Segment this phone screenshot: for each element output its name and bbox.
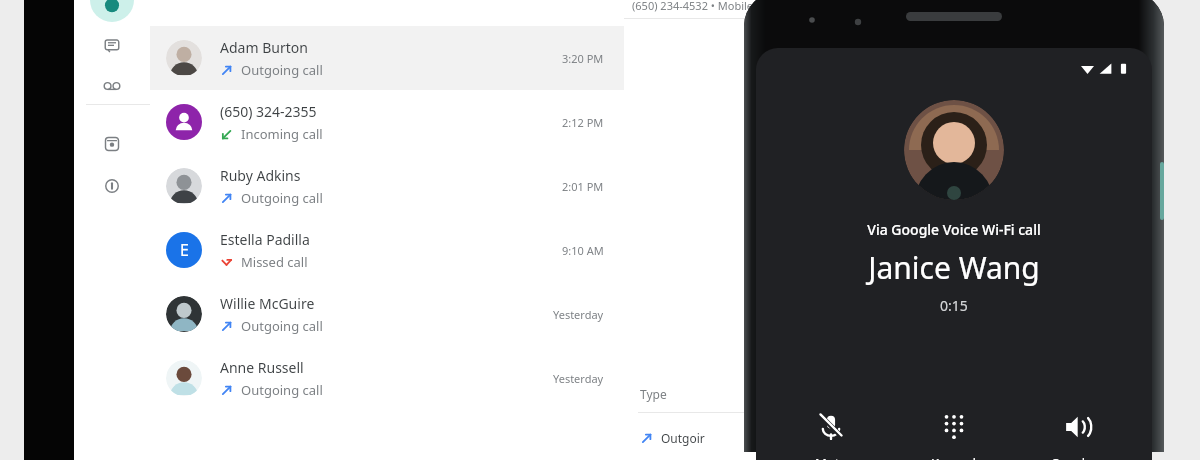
staticText: Anne Russell [220, 358, 304, 377]
staticText: Missed call [241, 253, 308, 271]
staticText: Outgoing call [241, 317, 323, 335]
staticText: Keypad [931, 454, 977, 460]
staticText: Type [640, 386, 667, 402]
button[interactable]: Adam Burton [150, 26, 624, 90]
staticText: 9:10 AM [562, 243, 604, 258]
button[interactable]: Willie McGuire [150, 282, 624, 346]
staticText: Yesterday [553, 307, 604, 322]
button[interactable]: Mute [783, 406, 879, 460]
staticText: E [180, 239, 189, 261]
button[interactable]: Messages [96, 30, 128, 62]
staticText: Speaker [1052, 454, 1102, 460]
staticText: Willie McGuire [220, 294, 315, 313]
staticText: (650) 324-2355 [220, 102, 317, 121]
staticText: Incoming call [241, 125, 323, 143]
button[interactable]: Voicemail [96, 70, 128, 102]
staticText: 2:01 PM [562, 179, 604, 194]
staticText: Via Google Voice Wi-Fi call [867, 220, 1041, 239]
staticText: Outgoing call [241, 61, 323, 79]
button[interactable]: E [150, 218, 624, 282]
button[interactable]: (650) 324-2355 [150, 90, 624, 154]
staticText: Estella Padilla [220, 230, 310, 249]
staticText: Janice Wang [868, 247, 1040, 288]
button[interactable]: Anne Russell [150, 346, 624, 410]
button[interactable]: Speaker [1029, 406, 1125, 460]
staticText: Ruby Adkins [220, 166, 301, 185]
staticText: 2:12 PM [562, 115, 604, 130]
staticText: Outgoing call [241, 381, 323, 399]
staticText: Outgoir [661, 430, 705, 446]
staticText: (650) 234-4532 • Mobile [632, 0, 754, 13]
button[interactable]: Compose [90, 0, 134, 22]
staticText: Yesterday [553, 371, 604, 386]
button[interactable]: Keypad [906, 406, 1002, 460]
staticText: 3:20 PM [562, 51, 604, 66]
staticText: Adam Burton [220, 38, 308, 57]
staticText: 0:15 [940, 296, 968, 315]
button[interactable]: Info [96, 170, 128, 202]
staticText: Mute [815, 454, 847, 460]
button[interactable]: Ruby Adkins [150, 154, 624, 218]
staticText: Outgoing call [241, 189, 323, 207]
button[interactable]: Archive [96, 128, 128, 160]
